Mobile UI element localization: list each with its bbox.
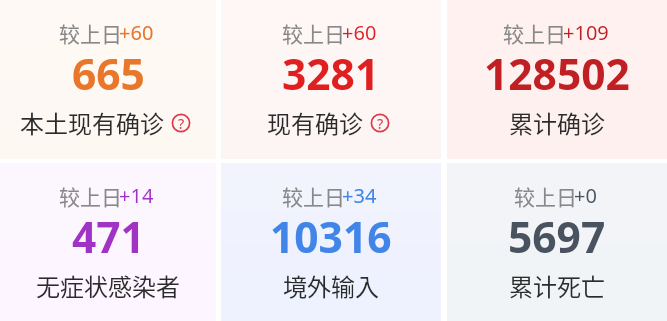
staticText: 本土现有确诊	[20, 105, 164, 140]
button[interactable]: Help	[370, 113, 390, 133]
staticText: ?	[377, 114, 384, 133]
button[interactable]: 较上日	[447, 0, 667, 159]
staticText: 较上日	[503, 18, 566, 48]
staticText: 累计死亡	[509, 268, 605, 303]
button[interactable]: Help	[171, 113, 191, 133]
staticText: 3281	[282, 45, 380, 103]
staticText: 较上日	[282, 181, 345, 211]
staticText: 较上日	[59, 181, 122, 211]
button[interactable]: 较上日	[221, 163, 441, 321]
staticText: ?	[178, 114, 185, 133]
staticText: +34	[342, 182, 377, 209]
staticText: 较上日	[282, 18, 345, 48]
staticText: 境外输入	[283, 268, 379, 303]
button[interactable]: 较上日	[447, 163, 667, 321]
staticText: 665	[72, 45, 145, 103]
staticText: +14	[119, 182, 154, 209]
staticText: 128502	[484, 45, 630, 103]
staticText: +60	[119, 19, 154, 46]
staticText: 现有确诊	[267, 105, 363, 140]
staticText: 5697	[508, 208, 606, 266]
staticText: 较上日	[514, 181, 577, 211]
staticText: +109	[563, 19, 609, 46]
staticText: 10316	[270, 208, 392, 266]
staticText: 累计确诊	[509, 105, 605, 140]
staticText: 471	[72, 208, 145, 266]
staticText: 无症状感染者	[36, 268, 180, 303]
button[interactable]: 较上日	[221, 0, 441, 159]
staticText: +60	[342, 19, 377, 46]
button[interactable]: 较上日	[0, 163, 216, 321]
staticText: 较上日	[59, 18, 122, 48]
button[interactable]: 较上日	[0, 0, 216, 159]
staticText: +0	[574, 182, 597, 209]
